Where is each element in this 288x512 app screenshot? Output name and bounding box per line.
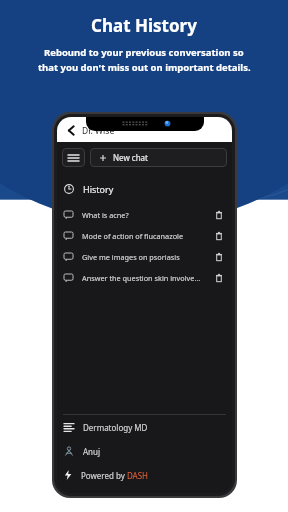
- button[interactable]: Delete conversation: [213, 251, 225, 263]
- staticText: Rebound to your previous conversation so: [44, 46, 244, 59]
- staticText: Anuj: [83, 446, 101, 457]
- staticText: What is acne?: [82, 210, 207, 220]
- button[interactable]: What is acne?: [57, 204, 232, 225]
- staticText: Mode of action of flucanazole: [82, 231, 207, 241]
- button[interactable]: Give me images on psoriasis: [57, 246, 232, 267]
- button[interactable]: Back: [61, 120, 81, 140]
- staticText: that you don't miss out on important det…: [38, 61, 251, 74]
- button[interactable]: Powered by DASH: [57, 463, 232, 487]
- button[interactable]: Delete conversation: [213, 209, 225, 221]
- staticText: Dr. Wise: [82, 125, 115, 137]
- staticText: New chat: [113, 152, 148, 163]
- button[interactable]: New chat: [90, 148, 227, 167]
- button[interactable]: Delete conversation: [213, 272, 225, 284]
- button[interactable]: History: [57, 179, 232, 199]
- staticText: Dermatology MD: [83, 422, 148, 433]
- staticText: Powered by DASH: [81, 470, 149, 481]
- button[interactable]: Delete conversation: [213, 230, 225, 242]
- button[interactable]: Answer the question skin involvement in …: [57, 267, 232, 288]
- button[interactable]: Menu: [62, 148, 85, 167]
- button[interactable]: Mode of action of flucanazole: [57, 225, 232, 246]
- button[interactable]: Dermatology MD: [57, 415, 232, 439]
- staticText: Answer the question skin involvement in …: [82, 273, 207, 283]
- button[interactable]: Anuj: [57, 439, 232, 463]
- staticText: History: [83, 183, 114, 195]
- staticText: Chat History: [91, 14, 197, 37]
- staticText: Give me images on psoriasis: [82, 252, 207, 262]
